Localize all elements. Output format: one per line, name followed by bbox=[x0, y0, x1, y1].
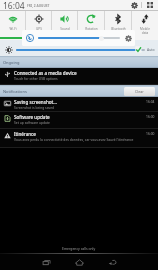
staticText: Wi-Fi bbox=[9, 27, 17, 31]
button[interactable]: Auto bbox=[147, 47, 158, 52]
staticText: Ongoing bbox=[3, 60, 20, 65]
button[interactable]: Sound settings bbox=[123, 33, 133, 43]
button[interactable]: Bluetooth bbox=[105, 11, 131, 40]
staticText: Clear bbox=[135, 89, 144, 94]
button[interactable]: Saving screenshot... bbox=[0, 97, 158, 112]
button[interactable]: Back bbox=[101, 254, 123, 270]
staticText: 16:04 bbox=[3, 0, 25, 10]
staticText: Connected as a media device bbox=[14, 70, 77, 76]
button[interactable]: Mobile data bbox=[132, 11, 158, 40]
button[interactable]: GPS bbox=[26, 11, 51, 40]
staticText: 16:04 bbox=[146, 99, 155, 103]
button[interactable]: Software update bbox=[0, 112, 158, 129]
staticText: Vous avez perdu la connectivité des donn… bbox=[14, 137, 134, 141]
button[interactable]: Rotation bbox=[78, 11, 104, 40]
staticText: Touch for other USB options bbox=[14, 76, 58, 80]
button[interactable]: Home bbox=[68, 254, 90, 270]
staticText: Rotation bbox=[85, 27, 98, 31]
button[interactable]: Recents bbox=[35, 254, 57, 270]
staticText: Bluetooth bbox=[111, 27, 126, 31]
button[interactable]: Connected as a media device bbox=[0, 68, 158, 85]
staticText: Sound bbox=[60, 27, 70, 31]
staticText: Mobile data bbox=[140, 27, 150, 35]
staticText: 16:00 bbox=[146, 114, 155, 118]
button[interactable]: Settings bbox=[127, 0, 141, 10]
button[interactable]: Quick settings grid bbox=[142, 0, 158, 10]
staticText: Itinérance bbox=[14, 131, 36, 137]
staticText: Set up software update bbox=[14, 120, 50, 124]
button[interactable]: Sound bbox=[52, 11, 77, 40]
button[interactable]: Clear bbox=[124, 87, 155, 96]
staticText: Emergency calls only bbox=[62, 246, 96, 251]
button[interactable]: Wi-Fi bbox=[0, 11, 25, 40]
staticText: 16:00 bbox=[146, 131, 155, 135]
staticText: Saving screenshot... bbox=[14, 99, 57, 105]
staticText: FRI, 2 AUGUST bbox=[27, 4, 50, 8]
staticText: GPS bbox=[36, 27, 42, 31]
staticText: Screenshot is being saved bbox=[14, 105, 55, 109]
button[interactable]: Sound settings bbox=[22, 30, 135, 46]
button[interactable]: Itinérance bbox=[0, 129, 158, 148]
staticText: Software update bbox=[14, 114, 50, 120]
staticText: Notifications bbox=[3, 89, 27, 94]
